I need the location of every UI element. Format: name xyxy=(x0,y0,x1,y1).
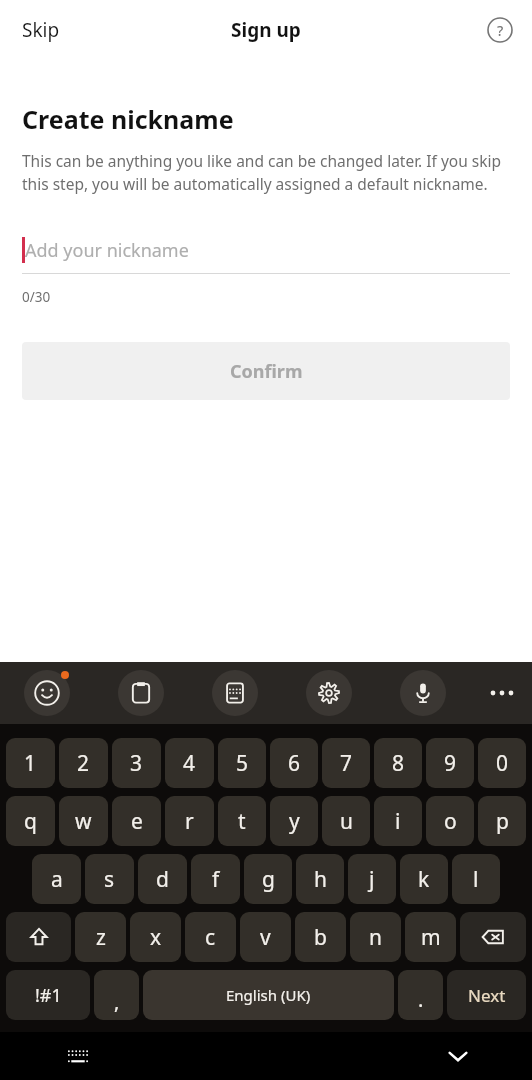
staticText: w xyxy=(75,807,92,836)
button[interactable]: Skip xyxy=(0,3,82,57)
staticText: v xyxy=(260,923,271,952)
button[interactable]: m xyxy=(405,912,456,962)
staticText: d xyxy=(156,865,169,894)
staticText: o xyxy=(444,807,457,836)
staticText: 7 xyxy=(340,749,353,778)
staticText: t xyxy=(238,807,246,836)
button[interactable]: 5 xyxy=(218,738,266,788)
button[interactable]: d xyxy=(138,854,187,904)
staticText: e xyxy=(131,807,143,836)
button[interactable]: j xyxy=(348,854,396,904)
button[interactable]: z xyxy=(75,912,126,962)
button[interactable]: p xyxy=(478,796,526,846)
button[interactable]: f xyxy=(191,854,240,904)
staticText: j xyxy=(369,865,375,894)
staticText: . xyxy=(418,986,424,1013)
staticText: !#1 xyxy=(35,983,62,1008)
button[interactable]: 7 xyxy=(322,738,370,788)
button[interactable]: y xyxy=(270,796,318,846)
button[interactable]: e xyxy=(112,796,161,846)
button[interactable]: Backspace xyxy=(460,912,526,962)
staticText: 9 xyxy=(444,749,457,778)
staticText: 6 xyxy=(288,749,301,778)
staticText: r xyxy=(185,807,194,836)
staticText: 3 xyxy=(130,749,143,778)
button[interactable]: v xyxy=(240,912,291,962)
staticText: 1 xyxy=(24,749,37,778)
staticText: n xyxy=(369,923,382,952)
staticText: b xyxy=(314,923,327,952)
button[interactable]: x xyxy=(130,912,181,962)
button[interactable]: w xyxy=(59,796,108,846)
staticText: 0 xyxy=(496,749,509,778)
button[interactable]: o xyxy=(426,796,474,846)
staticText: z xyxy=(96,923,106,952)
staticText: m xyxy=(421,923,441,952)
button[interactable]: !#1 xyxy=(6,970,90,1020)
staticText: l xyxy=(473,865,479,894)
staticText: p xyxy=(496,807,509,836)
button[interactable]: i xyxy=(374,796,422,846)
staticText: 5 xyxy=(236,749,249,778)
staticText: ? xyxy=(497,21,504,40)
button[interactable]: Change keyboard xyxy=(56,1034,100,1078)
staticText: 8 xyxy=(392,749,405,778)
button[interactable]: u xyxy=(322,796,370,846)
button[interactable]: 4 xyxy=(165,738,214,788)
staticText: a xyxy=(51,865,63,894)
staticText: This can be anything you like and can be… xyxy=(22,150,510,195)
staticText: Sign up xyxy=(231,17,301,43)
button[interactable]: Keyboard layout xyxy=(212,670,258,716)
button[interactable]: Settings xyxy=(306,670,352,716)
button[interactable]: 8 xyxy=(374,738,422,788)
button[interactable]: Voice input xyxy=(400,670,446,716)
button[interactable]: Next xyxy=(447,970,526,1020)
button[interactable]: q xyxy=(6,796,55,846)
button[interactable]: Confirm xyxy=(22,342,510,400)
button[interactable]: a xyxy=(32,854,81,904)
button[interactable]: , xyxy=(94,970,139,1020)
staticText: English (UK) xyxy=(226,985,311,1005)
staticText: Confirm xyxy=(230,359,303,384)
button[interactable]: Help xyxy=(478,8,522,52)
button[interactable]: 9 xyxy=(426,738,474,788)
staticText: i xyxy=(395,807,401,836)
button[interactable]: 6 xyxy=(270,738,318,788)
staticText: , xyxy=(114,988,120,1015)
button[interactable]: Hide keyboard xyxy=(436,1034,480,1078)
staticText: u xyxy=(340,807,353,836)
button[interactable]: Clipboard xyxy=(118,670,164,716)
staticText: s xyxy=(104,865,115,894)
button[interactable]: 2 xyxy=(59,738,108,788)
button[interactable]: g xyxy=(244,854,292,904)
button[interactable]: 3 xyxy=(112,738,161,788)
staticText: Next xyxy=(468,984,506,1007)
button[interactable]: b xyxy=(295,912,346,962)
button[interactable]: l xyxy=(452,854,500,904)
button[interactable]: c xyxy=(185,912,236,962)
staticText: x xyxy=(150,923,162,952)
staticText: g xyxy=(262,865,275,894)
staticText: q xyxy=(24,807,37,836)
button[interactable]: 0 xyxy=(478,738,526,788)
button[interactable]: Space, English (UK) xyxy=(143,970,394,1020)
staticText: 2 xyxy=(77,749,90,778)
button[interactable]: Emoji xyxy=(24,670,70,716)
staticText: Add your nickname xyxy=(25,238,189,263)
button[interactable]: r xyxy=(165,796,214,846)
button[interactable]: n xyxy=(350,912,401,962)
button[interactable]: More options xyxy=(480,671,524,715)
staticText: c xyxy=(205,923,216,952)
staticText: Create nickname xyxy=(22,102,234,136)
button[interactable]: 1 xyxy=(6,738,55,788)
staticText: Skip xyxy=(22,17,60,43)
button[interactable]: h xyxy=(296,854,344,904)
button[interactable]: Add your nickname xyxy=(22,227,510,273)
button[interactable]: t xyxy=(218,796,266,846)
staticText: 0/30 xyxy=(22,288,51,306)
button[interactable]: k xyxy=(400,854,448,904)
staticText: k xyxy=(418,865,430,894)
button[interactable]: Shift xyxy=(6,912,71,962)
button[interactable]: s xyxy=(85,854,134,904)
button[interactable]: . xyxy=(398,970,443,1020)
